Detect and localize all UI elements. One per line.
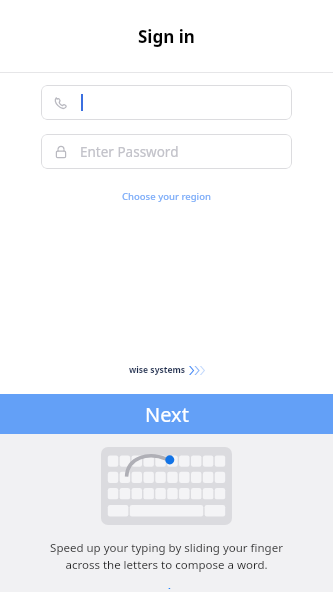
button[interactable]: Choose your region — [116, 187, 217, 206]
button[interactable]: Password — [41, 134, 292, 169]
staticText: Sign in — [138, 25, 195, 48]
staticText: Choose your region — [122, 190, 211, 203]
staticText: Continue — [136, 584, 197, 589]
other: Password — [54, 145, 68, 159]
button[interactable]: Next — [0, 394, 333, 434]
staticText: Next — [145, 401, 189, 428]
button[interactable]: Phone number — [41, 85, 292, 120]
staticText: Speed up your typing by sliding your fin… — [50, 540, 283, 572]
other: Phone number — [53, 95, 69, 111]
staticText: wise systems — [129, 364, 186, 376]
button[interactable]: Continue — [126, 581, 207, 592]
staticText: Enter Password — [80, 143, 179, 161]
